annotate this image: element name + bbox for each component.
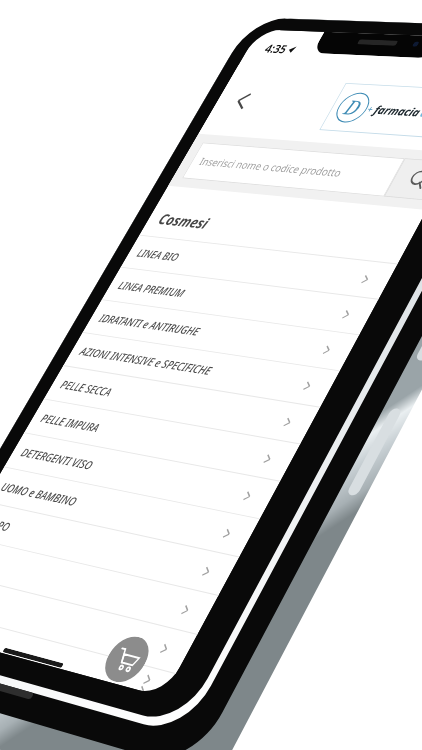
- button[interactable]: LINEA PREMIUM: [102, 268, 378, 334]
- staticText: UOMO e BAMBINO: [0, 479, 80, 509]
- staticText: LINEA PREMIUM: [115, 278, 188, 300]
- button[interactable]: CAPELLI: [0, 572, 197, 673]
- staticText: PELLE SECCA: [57, 377, 115, 400]
- button[interactable]: SOLARI: [0, 537, 218, 634]
- staticText: Cosmesi: [154, 209, 213, 233]
- staticText: CORPO: [0, 513, 14, 535]
- button[interactable]: Inserisci nome o codice prodotto: [182, 142, 405, 196]
- button[interactable]: LINEA BIO: [121, 235, 397, 299]
- staticText: IDRATANTI e ANTIRUGHE: [96, 310, 203, 339]
- button[interactable]: Cerca: [384, 158, 422, 201]
- staticText: AZIONI INTENSIVE e SPECIFICHE: [77, 343, 215, 378]
- button[interactable]: UOMO e BAMBINO: [0, 467, 260, 556]
- staticText: PELLE IMPURA: [38, 410, 103, 436]
- button[interactable]: PELLE IMPURA: [24, 399, 300, 481]
- button[interactable]: CORPO: [0, 502, 239, 595]
- staticText: DETERGENTI VISO: [18, 444, 96, 473]
- button[interactable]: PELLE SECCA: [44, 366, 320, 444]
- staticText: +: [365, 102, 377, 115]
- staticText: 4:35: [262, 41, 291, 56]
- staticText: dabbene: [417, 105, 422, 123]
- button[interactable]: AZIONI INTENSIVE e SPECIFICHE: [63, 333, 340, 407]
- staticText: D: [339, 93, 368, 120]
- button[interactable]: DETERGENTI VISO: [4, 433, 280, 518]
- staticText: LINEA BIO: [134, 246, 182, 264]
- button[interactable]: MAKE UP: [0, 607, 176, 697]
- button[interactable]: Indietro: [218, 84, 267, 118]
- staticText: farmacia: [371, 102, 422, 120]
- staticText: Inserisci nome o codice prodotto: [197, 154, 345, 180]
- button[interactable]: Carrello: [97, 633, 157, 686]
- button[interactable]: IDRATANTI e ANTIRUGHE: [83, 300, 359, 370]
